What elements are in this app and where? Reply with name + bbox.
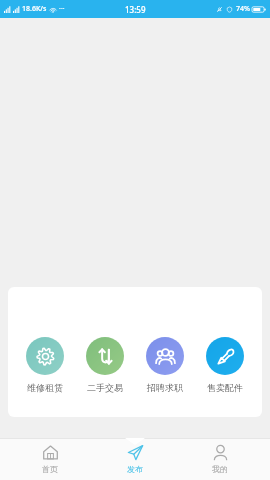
button[interactable]: 维修租赁: [16, 335, 74, 395]
button[interactable]: 发布: [100, 438, 170, 480]
button[interactable]: 招聘求职: [136, 335, 194, 395]
staticText: 维修租赁: [27, 382, 63, 393]
staticText: 二手交易: [87, 382, 123, 393]
staticText: 售卖配件: [207, 382, 243, 393]
staticText: 18.6K/s: [22, 4, 47, 14]
staticText: 我的: [212, 464, 228, 474]
staticText: 74%: [236, 4, 250, 14]
button[interactable]: 二手交易: [76, 335, 134, 395]
staticText: 招聘求职: [147, 382, 183, 393]
staticText: 首页: [42, 464, 58, 474]
staticText: ···: [59, 4, 65, 14]
button[interactable]: 首页: [15, 438, 85, 480]
staticText: 发布: [127, 464, 143, 474]
button[interactable]: 我的: [185, 438, 255, 480]
staticText: 13:59: [125, 4, 146, 15]
button[interactable]: 售卖配件: [196, 335, 254, 395]
